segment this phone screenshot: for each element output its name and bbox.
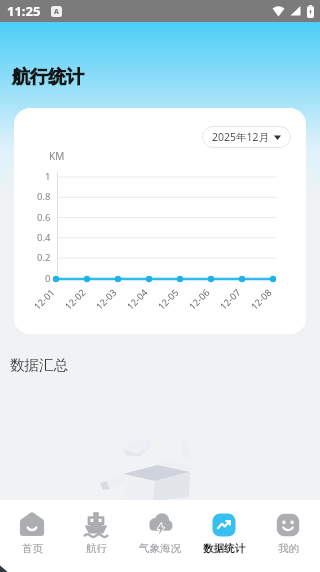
staticText: 12-02 [62, 286, 89, 313]
staticText: 航行 [86, 542, 107, 555]
staticText: 0.2 [37, 251, 51, 264]
staticText: 12-03 [93, 286, 120, 313]
staticText: 气象海况 [139, 542, 181, 555]
staticText: 12-05 [155, 286, 182, 313]
staticText: 12-04 [124, 286, 151, 313]
staticText: A [54, 7, 59, 17]
staticText: 数据汇总 [10, 356, 68, 374]
staticText: 1 [45, 170, 51, 183]
staticText: 0.4 [37, 231, 51, 244]
staticText: 12-08 [248, 286, 275, 313]
button[interactable]: 气象海况 [128, 500, 192, 572]
staticText: 0.8 [37, 190, 51, 203]
staticText: 0 [45, 272, 51, 285]
button[interactable]: 我的 [256, 500, 320, 572]
staticText: 12-01 [31, 286, 58, 313]
button[interactable]: 2025年12月 [202, 126, 291, 148]
staticText: 2025年12月 [212, 130, 270, 144]
staticText: 11:25 [7, 2, 41, 20]
staticText: 首页 [22, 542, 43, 555]
button[interactable]: 数据统计 [192, 500, 256, 572]
staticText: 12-06 [186, 286, 213, 313]
staticText: 我的 [278, 542, 299, 555]
staticText: 12-07 [217, 286, 244, 313]
staticText: 航行统计 [12, 66, 84, 89]
staticText: 0.6 [37, 211, 51, 224]
button[interactable]: 航行 [64, 500, 128, 572]
staticText: KM [49, 149, 65, 163]
staticText: 数据统计 [203, 542, 245, 555]
button[interactable]: 首页 [0, 500, 64, 572]
